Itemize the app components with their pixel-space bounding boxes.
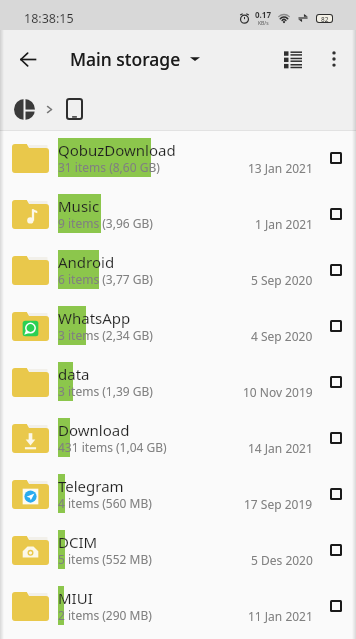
button[interactable]: Storage analysis bbox=[8, 93, 40, 125]
staticText: QobuzDownload bbox=[58, 140, 176, 160]
staticText: 11 Jan 2021 bbox=[248, 608, 313, 624]
staticText: Download bbox=[58, 420, 130, 440]
staticText: 9 items (3,96 GB) bbox=[58, 215, 153, 231]
staticText: 31 items (8,60 GB) bbox=[58, 159, 160, 175]
button[interactable]: QobuzDownload bbox=[0, 131, 356, 187]
button[interactable]: DCIM bbox=[0, 523, 356, 579]
button[interactable]: MIUI bbox=[0, 579, 356, 635]
button[interactable]: Select item bbox=[321, 423, 351, 453]
staticText: 0.17 bbox=[255, 9, 271, 20]
staticText: 5 Des 2020 bbox=[251, 552, 313, 568]
staticText: 17 Sep 2019 bbox=[244, 496, 313, 512]
button[interactable]: Download bbox=[0, 411, 356, 467]
staticText: MIUI bbox=[58, 588, 93, 608]
staticText: 2 items (290 MB) bbox=[58, 607, 152, 623]
staticText: Telegram bbox=[58, 476, 124, 496]
staticText: WhatsApp bbox=[58, 308, 131, 328]
button[interactable]: Internal device storage bbox=[58, 93, 90, 125]
staticText: 4 items (560 MB) bbox=[58, 495, 152, 511]
button[interactable]: Select item bbox=[321, 367, 351, 397]
button[interactable]: Android bbox=[0, 243, 356, 299]
button[interactable]: Select item bbox=[321, 535, 351, 565]
staticText: KB/s bbox=[258, 20, 269, 27]
staticText: 5 Sep 2020 bbox=[251, 272, 313, 288]
staticText: 4 Sep 2020 bbox=[251, 328, 313, 344]
staticText: 14 Jan 2021 bbox=[248, 440, 313, 456]
staticText: 13 Jan 2021 bbox=[248, 160, 313, 176]
staticText: Main storage bbox=[70, 47, 181, 71]
staticText: 431 items (1,04 GB) bbox=[58, 439, 167, 455]
button[interactable]: WhatsApp bbox=[0, 299, 356, 355]
staticText: 82 bbox=[321, 15, 329, 22]
button[interactable]: Music bbox=[0, 187, 356, 243]
button[interactable]: Select item bbox=[321, 479, 351, 509]
staticText: 3 items (1,39 GB) bbox=[58, 383, 153, 399]
staticText: 18:38:15 bbox=[24, 10, 74, 27]
staticText: 3 items (2,34 GB) bbox=[58, 327, 153, 343]
button[interactable]: Select item bbox=[321, 199, 351, 229]
button[interactable]: View mode bbox=[264, 35, 312, 83]
button[interactable]: Back bbox=[0, 31, 56, 87]
button[interactable]: More options bbox=[312, 37, 356, 81]
button[interactable]: Telegram bbox=[0, 467, 356, 523]
button[interactable]: data bbox=[0, 355, 356, 411]
staticText: Main storage bbox=[70, 47, 181, 71]
staticText: 10 Nov 2019 bbox=[243, 384, 313, 400]
button[interactable]: Select item bbox=[321, 591, 351, 621]
staticText: data bbox=[58, 364, 90, 384]
staticText: 5 items (552 MB) bbox=[58, 551, 152, 567]
staticText: DCIM bbox=[58, 532, 98, 552]
staticText: Android bbox=[58, 252, 115, 272]
button[interactable]: Select item bbox=[321, 255, 351, 285]
staticText: 1 Jan 2021 bbox=[255, 216, 313, 232]
staticText: 6 items (3,77 GB) bbox=[58, 271, 153, 287]
staticText: Music bbox=[58, 196, 100, 216]
button[interactable]: Select item bbox=[321, 311, 351, 341]
button[interactable]: Select item bbox=[321, 143, 351, 173]
